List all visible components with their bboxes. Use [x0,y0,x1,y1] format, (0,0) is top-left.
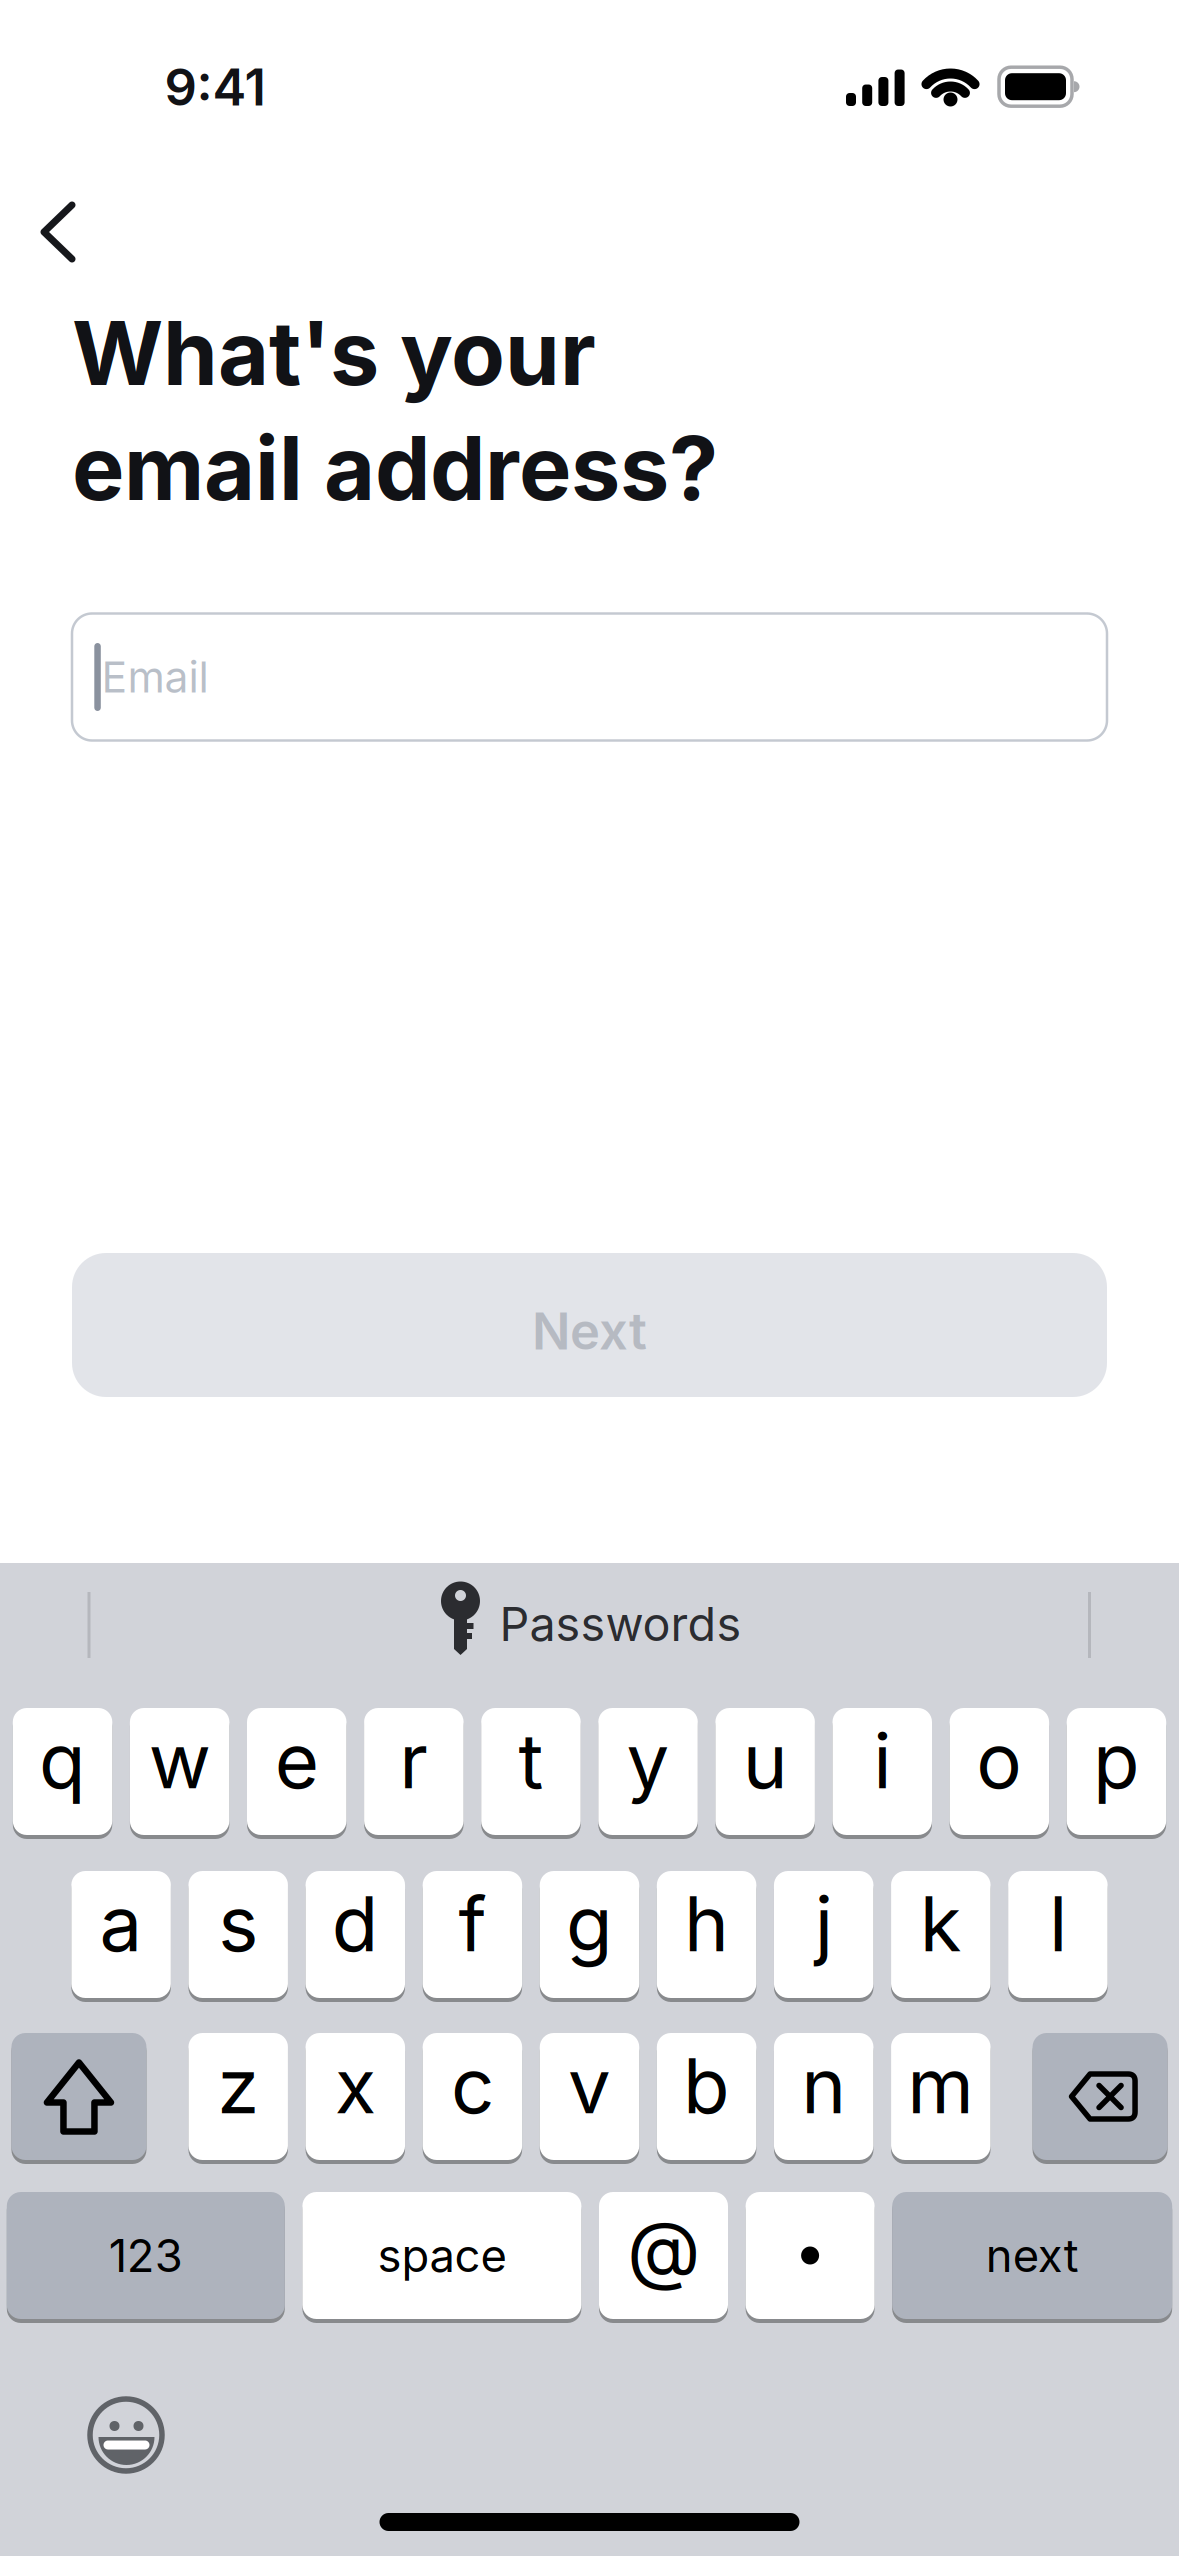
button[interactable]: a [71,1871,171,1998]
staticText: r [399,1716,428,1805]
staticText: y [626,1716,669,1805]
staticText: 9:41 [164,57,265,117]
button[interactable]: r [364,1708,464,1835]
staticText: b [683,2041,730,2130]
button[interactable]: Delete [1033,2033,1168,2160]
button[interactable]: y [598,1708,698,1835]
staticText: m [907,2041,974,2130]
button[interactable]: c [423,2033,522,2160]
staticText: Passwords [499,1596,741,1652]
button[interactable]: @ [599,2192,728,2319]
button[interactable]: Shift [11,2033,146,2160]
staticText: n [801,2041,846,2130]
staticText: l [1049,1879,1067,1968]
staticText: email address? [72,416,718,520]
button[interactable]: t [481,1708,581,1835]
staticText: z [217,2041,259,2130]
button[interactable]: Email [72,613,1107,740]
button[interactable]: Back [39,201,77,263]
staticText: Next [532,1301,647,1361]
button[interactable]: g [540,1871,639,1998]
staticText: c [451,2041,494,2130]
button[interactable]: i [832,1708,932,1835]
button[interactable]: p [1067,1708,1166,1835]
button[interactable]: x [306,2033,405,2160]
button[interactable]: h [657,1871,756,1998]
button[interactable]: u [715,1708,815,1835]
staticText: h [684,1879,729,1968]
staticText: v [568,2041,611,2130]
button[interactable]: j [774,1871,873,1998]
button[interactable]: v [540,2033,639,2160]
staticText: t [518,1716,543,1805]
button[interactable]: m [891,2033,991,2160]
staticText: @ [627,2204,700,2293]
button[interactable]: d [306,1871,405,1998]
button[interactable]: w [130,1708,229,1835]
staticText: x [335,2041,376,2130]
staticText: j [815,1879,833,1968]
button[interactable]: Emoji [83,2392,169,2478]
staticText: d [332,1879,379,1968]
staticText: w [149,1716,211,1805]
staticText: s [218,1879,258,1968]
staticText: k [920,1879,962,1968]
button[interactable]: s [188,1871,288,1998]
button[interactable]: e [247,1708,346,1835]
button[interactable]: 123 [7,2192,285,2319]
staticText: space [377,2229,506,2282]
staticText: f [458,1879,486,1968]
button[interactable]: q [13,1708,112,1835]
staticText: g [566,1879,613,1968]
button[interactable]: o [950,1708,1049,1835]
button[interactable]: Next [72,1253,1107,1397]
staticText: What's your [72,301,596,405]
staticText: e [275,1716,319,1805]
button[interactable]: k [891,1871,991,1998]
staticText: q [39,1716,86,1805]
staticText: u [743,1716,788,1805]
staticText: Email [101,652,208,702]
button[interactable]: next [892,2192,1172,2319]
staticText: i [873,1716,891,1805]
button[interactable]: l [1008,1871,1108,1998]
staticText: next [986,2229,1079,2282]
staticText: p [1093,1716,1140,1805]
button[interactable]: f [423,1871,522,1998]
button[interactable]: Passwords [437,1587,741,1661]
staticText: a [100,1879,143,1968]
staticText: 123 [109,2229,183,2282]
button[interactable]: space [302,2192,581,2319]
button[interactable]: Period [746,2192,875,2319]
button[interactable]: b [657,2033,756,2160]
staticText: o [976,1716,1022,1805]
button[interactable]: n [774,2033,873,2160]
button[interactable]: z [188,2033,288,2160]
